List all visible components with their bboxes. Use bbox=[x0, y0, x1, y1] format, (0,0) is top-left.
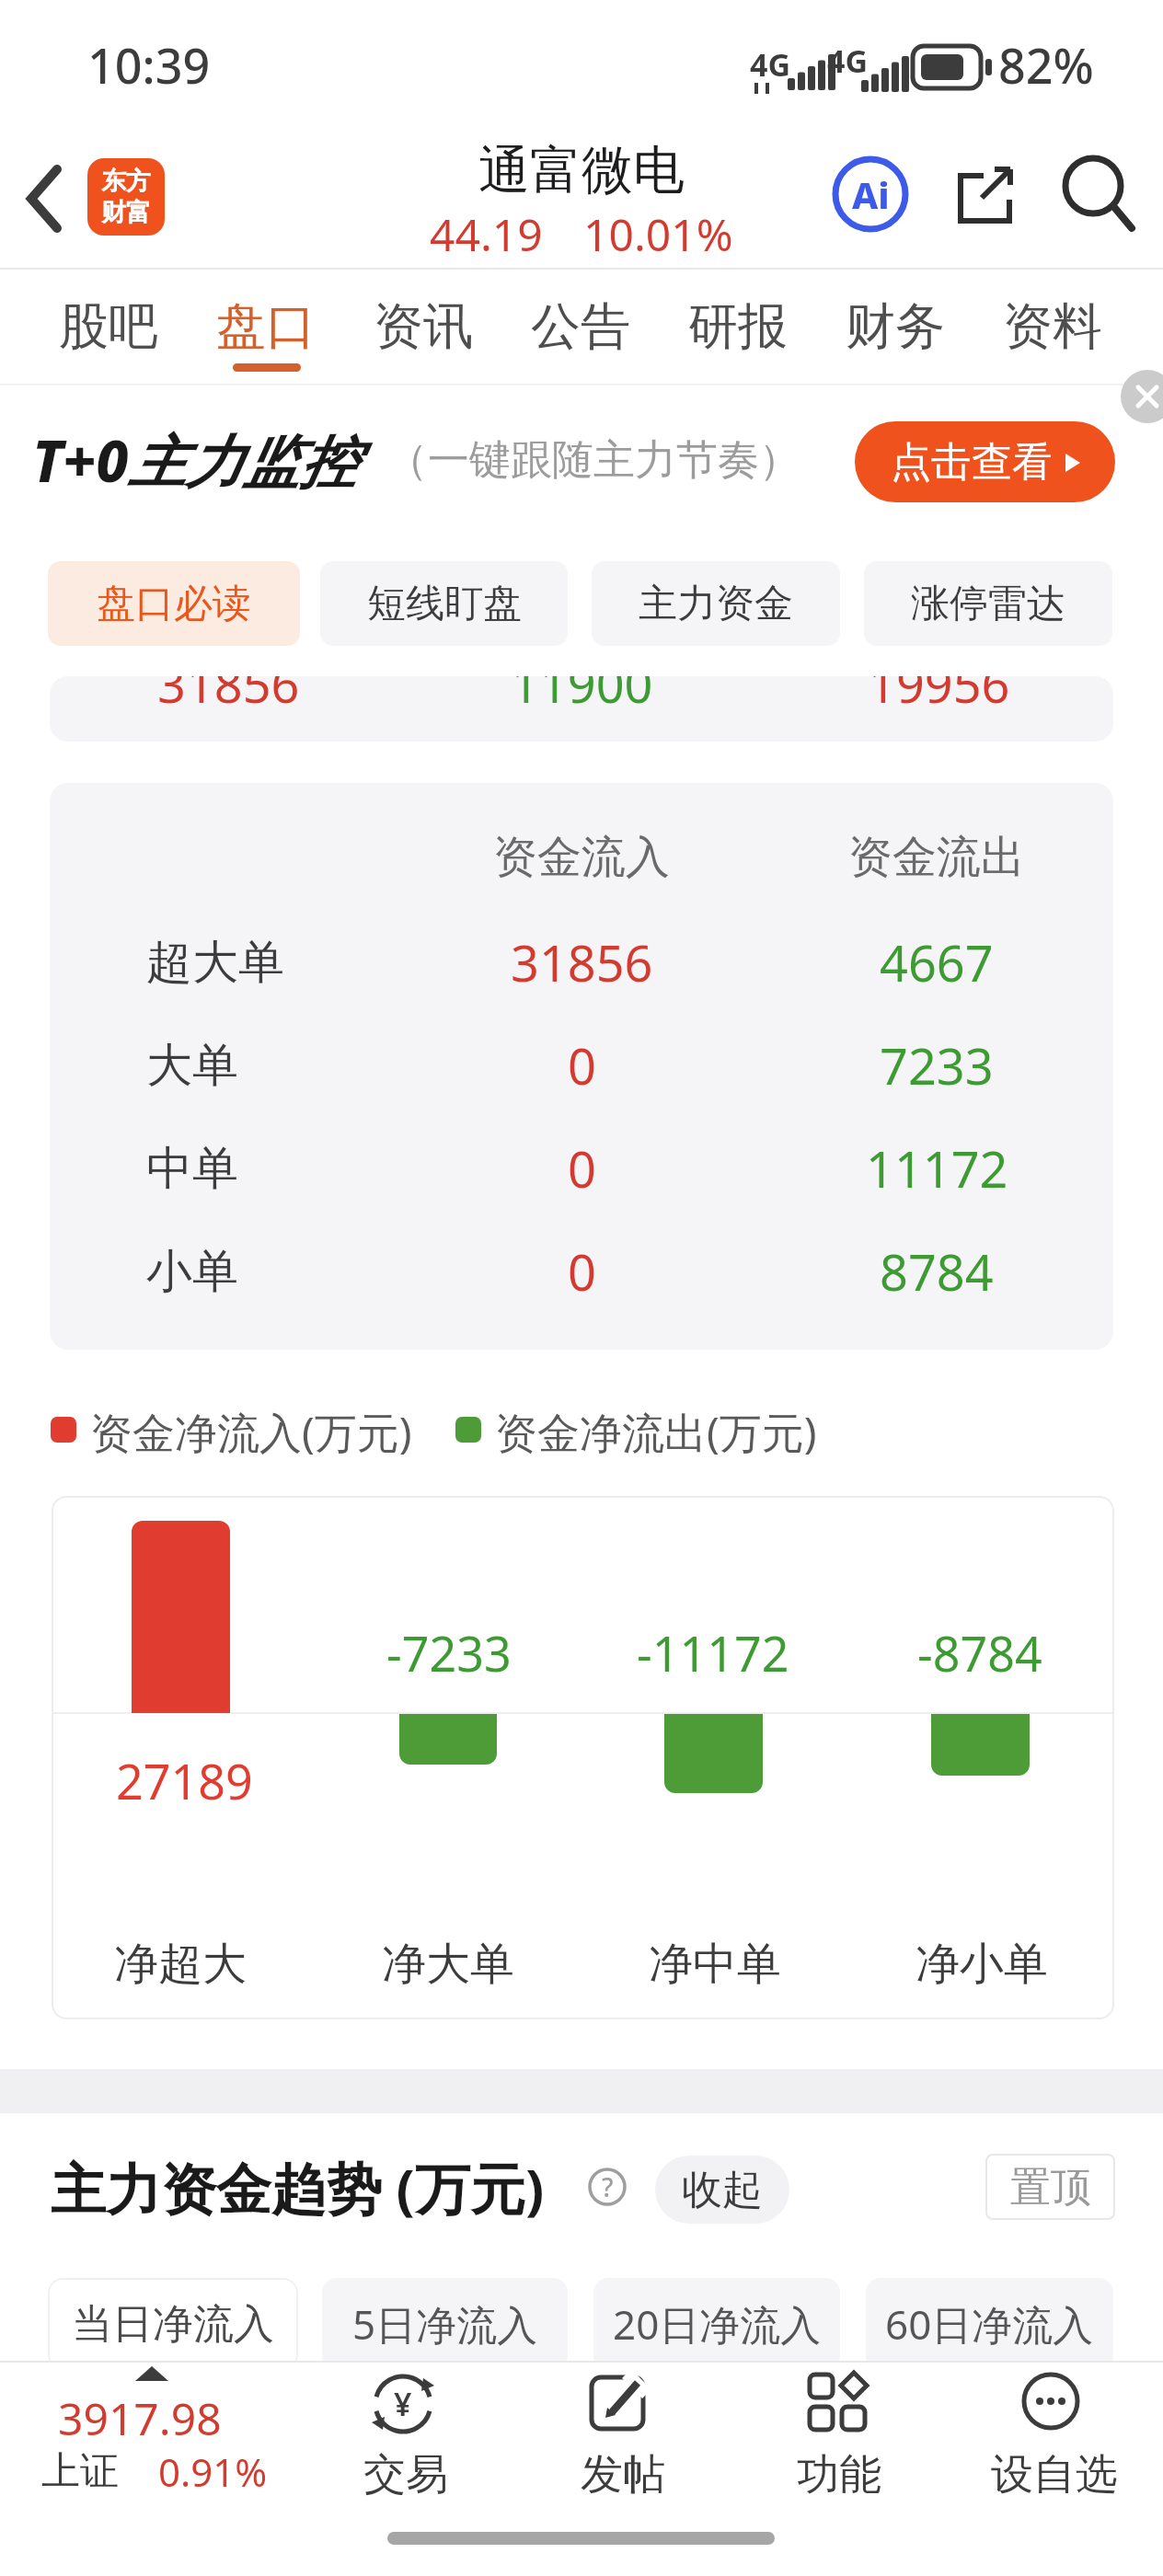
staticText: 3917.98 bbox=[58, 2388, 222, 2448]
staticText: 5日净流入 bbox=[352, 2296, 538, 2352]
button[interactable]: 资料 bbox=[974, 272, 1131, 381]
staticText: 上证 bbox=[41, 2447, 119, 2496]
staticText: -8784 bbox=[917, 1620, 1042, 1685]
staticText: 27189 bbox=[116, 1748, 253, 1813]
staticText: 发帖 bbox=[581, 2448, 665, 2501]
staticText: 资讯 bbox=[374, 295, 473, 358]
staticText: （一键跟随主力节奏） bbox=[386, 434, 800, 487]
staticText: 东方 bbox=[101, 166, 151, 197]
staticText: 点击查看 bbox=[891, 437, 1053, 488]
staticText: 19956 bbox=[868, 676, 1010, 715]
staticText: 盘口必读 bbox=[97, 580, 251, 628]
button[interactable]: 20日净流入 bbox=[593, 2278, 840, 2370]
staticText: 0.91% bbox=[158, 2445, 268, 2498]
button[interactable]: 东方 bbox=[87, 158, 165, 236]
staticText: 60日净流入 bbox=[885, 2296, 1094, 2352]
button[interactable] bbox=[555, 2364, 684, 2502]
staticText: -11172 bbox=[637, 1620, 789, 1685]
button[interactable] bbox=[773, 2364, 902, 2502]
staticText: 资金净流入(万元) bbox=[90, 1403, 412, 1461]
staticText: 收起 bbox=[682, 2165, 763, 2215]
staticText: 4G bbox=[827, 40, 869, 82]
button[interactable]: 置顶 bbox=[985, 2154, 1115, 2220]
staticText: 4667 bbox=[880, 928, 994, 996]
staticText: ¥ bbox=[394, 2383, 412, 2425]
button[interactable]: 涨停雷达 bbox=[864, 561, 1112, 646]
staticText: 0 bbox=[568, 1031, 596, 1099]
staticText: 主力资金趋势 (万元) bbox=[51, 2150, 545, 2225]
button[interactable]: 资讯 bbox=[345, 272, 501, 381]
button[interactable]: 主力资金 bbox=[592, 561, 840, 646]
staticText: 44.19 bbox=[430, 204, 543, 252]
staticText: 11900 bbox=[511, 676, 653, 715]
staticText: 小单 bbox=[146, 1243, 238, 1301]
staticText: ? bbox=[602, 2169, 614, 2204]
staticText: 当日净流入 bbox=[72, 2299, 274, 2350]
staticText: 通富微电 bbox=[478, 138, 685, 203]
button[interactable] bbox=[1121, 370, 1163, 423]
staticText: 研报 bbox=[688, 295, 788, 358]
staticText: 0 bbox=[568, 1237, 596, 1305]
staticText: 置顶 bbox=[1010, 2162, 1091, 2213]
staticText: Ai bbox=[852, 169, 890, 219]
staticText: 财富 bbox=[101, 197, 151, 228]
staticText: 7233 bbox=[880, 1031, 994, 1099]
button[interactable]: 研报 bbox=[660, 272, 816, 381]
button[interactable]: Ai bbox=[830, 154, 911, 235]
button[interactable]: 5日净流入 bbox=[322, 2278, 568, 2370]
button[interactable] bbox=[339, 2364, 467, 2502]
staticText: 盘口 bbox=[216, 295, 316, 358]
staticText: 0 bbox=[568, 1134, 596, 1202]
staticText: 资金流入 bbox=[493, 830, 670, 885]
staticText: 中单 bbox=[146, 1140, 238, 1198]
staticText: 财务 bbox=[846, 295, 945, 358]
staticText: 主力资金 bbox=[639, 580, 793, 628]
button[interactable]: 当日净流入 bbox=[48, 2278, 298, 2370]
staticText: 4G bbox=[750, 43, 791, 86]
staticText: 设自选 bbox=[991, 2448, 1118, 2501]
staticText: 交易 bbox=[363, 2448, 448, 2501]
staticText: 20日净流入 bbox=[613, 2296, 822, 2352]
button[interactable]: 短线盯盘 bbox=[320, 561, 568, 646]
button[interactable]: 财务 bbox=[817, 272, 973, 381]
button[interactable]: 盘口 bbox=[188, 272, 344, 381]
staticText: 短线盯盘 bbox=[367, 580, 522, 628]
staticText: 净超大 bbox=[114, 1937, 247, 1992]
button[interactable]: 盘口必读 bbox=[48, 561, 300, 646]
staticText: T+0主力监控 bbox=[32, 421, 357, 500]
staticText: 11172 bbox=[866, 1134, 1008, 1202]
button[interactable] bbox=[1054, 149, 1139, 234]
staticText: 净中单 bbox=[649, 1937, 781, 1992]
button[interactable] bbox=[956, 165, 1017, 225]
button[interactable]: 点击查看 bbox=[855, 421, 1115, 502]
staticText: 净大单 bbox=[382, 1937, 514, 1992]
staticText: 31856 bbox=[511, 928, 653, 996]
staticText: 82% bbox=[998, 32, 1094, 98]
button[interactable]: 60日净流入 bbox=[866, 2278, 1113, 2370]
staticText: 涨停雷达 bbox=[911, 580, 1065, 628]
button[interactable] bbox=[28, 2379, 276, 2499]
staticText: 大单 bbox=[146, 1037, 238, 1095]
staticText: -7233 bbox=[386, 1620, 512, 1685]
staticText: 8784 bbox=[880, 1237, 994, 1305]
button[interactable]: ? bbox=[587, 2167, 628, 2207]
button[interactable] bbox=[986, 2364, 1124, 2502]
staticText: 资金流出 bbox=[848, 830, 1025, 885]
staticText: 股吧 bbox=[59, 295, 158, 358]
staticText: 公告 bbox=[531, 295, 630, 358]
button[interactable]: 收起 bbox=[655, 2156, 789, 2224]
staticText: 31856 bbox=[157, 676, 300, 715]
staticText: 超大单 bbox=[146, 934, 284, 992]
button[interactable] bbox=[17, 162, 75, 236]
staticText: 净小单 bbox=[915, 1937, 1048, 1992]
staticText: 资料 bbox=[1003, 295, 1102, 358]
staticText: 10.01% bbox=[583, 204, 733, 252]
button[interactable]: 股吧 bbox=[30, 272, 187, 381]
button[interactable]: 公告 bbox=[502, 272, 659, 381]
staticText: 10:39 bbox=[87, 32, 211, 98]
staticText: 资金净流出(万元) bbox=[495, 1403, 817, 1461]
staticText: 功能 bbox=[797, 2448, 881, 2501]
